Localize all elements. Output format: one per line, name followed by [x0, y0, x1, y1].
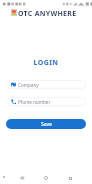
staticText: OTC ANYWHERE	[18, 9, 77, 19]
button[interactable]: Back	[14, 170, 30, 184]
button[interactable]: Company	[6, 80, 86, 89]
staticText: Save	[41, 121, 52, 128]
staticText: LOGIN	[0, 58, 92, 68]
staticText: Company	[18, 82, 39, 88]
button[interactable]: Phone number	[6, 97, 86, 106]
button[interactable]: Recent apps	[62, 170, 78, 184]
staticText: Phone number	[18, 99, 51, 105]
button[interactable]: Save	[6, 119, 86, 129]
button[interactable]: Home	[38, 170, 54, 184]
